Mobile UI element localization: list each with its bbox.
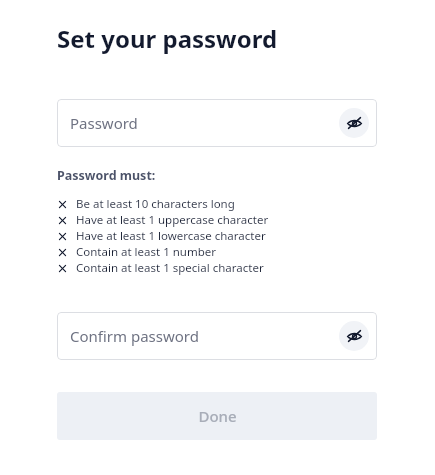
staticText: Have at least 1 uppercase character — [76, 212, 269, 228]
button[interactable]: Confirm password — [57, 312, 377, 360]
staticText: Confirm password — [70, 326, 199, 346]
staticText: Contain at least 1 number — [76, 244, 216, 260]
button[interactable]: Password — [57, 99, 377, 147]
button[interactable]: Show password — [339, 108, 369, 138]
button[interactable]: Done — [57, 392, 377, 440]
staticText: Be at least 10 characters long — [76, 196, 235, 212]
staticText: Contain at least 1 special character — [76, 260, 264, 276]
staticText: Have at least 1 lowercase character — [76, 228, 266, 244]
staticText: Set your password — [57, 22, 278, 55]
staticText: Done — [198, 406, 237, 426]
button[interactable]: Show confirm password — [339, 321, 369, 351]
staticText: Password must: — [57, 167, 156, 184]
staticText: Password — [70, 113, 138, 133]
